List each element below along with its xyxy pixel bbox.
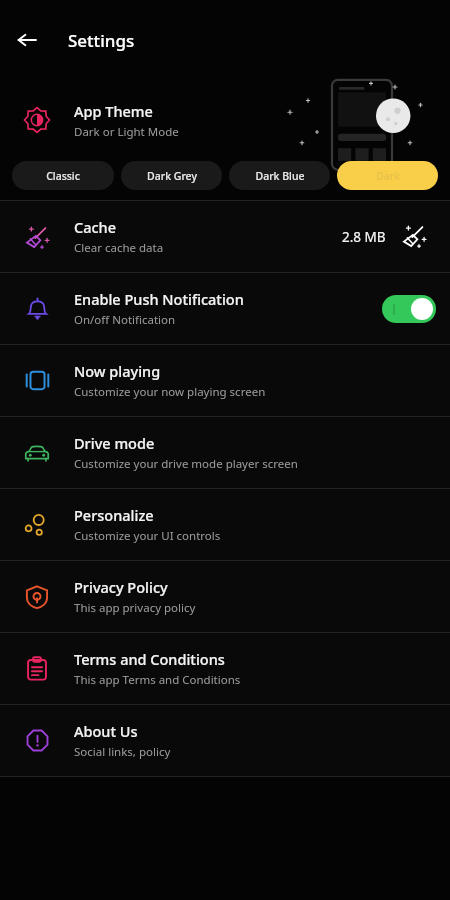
staticText: Social links, policy bbox=[74, 744, 171, 760]
staticText: Clear cache data bbox=[74, 240, 164, 256]
staticText: Classic bbox=[46, 169, 80, 183]
button[interactable]: Dark bbox=[337, 161, 438, 190]
button[interactable]: Enable Push Notification bbox=[0, 273, 450, 344]
button[interactable]: Classic bbox=[12, 161, 114, 190]
staticText: Customize your drive mode player screen bbox=[74, 456, 298, 472]
button[interactable]: Personalize bbox=[0, 489, 450, 560]
button[interactable]: Dark Grey bbox=[121, 161, 222, 190]
staticText: This app privacy policy bbox=[74, 600, 196, 616]
button[interactable]: Now playing bbox=[0, 345, 450, 416]
staticText: Terms and Conditions bbox=[74, 649, 225, 669]
staticText: Customize your UI controls bbox=[74, 528, 221, 544]
staticText: Dark Grey bbox=[147, 169, 197, 183]
button[interactable]: Drive mode bbox=[0, 417, 450, 488]
button[interactable]: App Theme bbox=[0, 92, 450, 148]
button[interactable]: Privacy Policy bbox=[0, 561, 450, 632]
staticText: About Us bbox=[74, 721, 138, 741]
button[interactable]: Back bbox=[10, 23, 44, 57]
staticText: Now playing bbox=[74, 361, 161, 381]
staticText: Enable Push Notification bbox=[74, 289, 244, 309]
staticText: Drive mode bbox=[74, 433, 155, 453]
staticText: This app Terms and Conditions bbox=[74, 672, 241, 688]
staticText: Dark or Light Mode bbox=[74, 124, 179, 140]
staticText: Customize your now playing screen bbox=[74, 384, 266, 400]
staticText: On/off Notification bbox=[74, 312, 176, 328]
staticText: Settings bbox=[68, 29, 135, 52]
staticText: Personalize bbox=[74, 505, 154, 525]
staticText: Privacy Policy bbox=[74, 577, 168, 597]
staticText: Dark Blue bbox=[255, 169, 305, 183]
button[interactable]: Enable Push Notification toggle bbox=[382, 295, 436, 323]
button[interactable]: Cache bbox=[0, 201, 450, 272]
button[interactable]: Dark Blue bbox=[229, 161, 330, 190]
staticText: Dark bbox=[376, 169, 400, 183]
staticText: 2.8 MB bbox=[342, 228, 386, 246]
staticText: App Theme bbox=[74, 101, 153, 121]
button[interactable]: About Us bbox=[0, 705, 450, 776]
button[interactable]: Terms and Conditions bbox=[0, 633, 450, 704]
staticText: Cache bbox=[74, 217, 117, 237]
